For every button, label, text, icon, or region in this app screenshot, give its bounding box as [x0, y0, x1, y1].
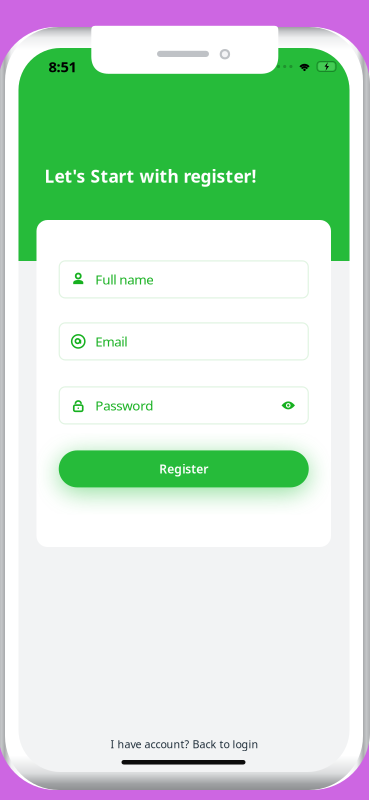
staticText: Full name: [95, 270, 154, 288]
staticText: Password: [95, 396, 153, 414]
button[interactable]: Full name: [59, 261, 308, 298]
staticText: Register: [159, 461, 208, 477]
staticText: 8:51: [48, 57, 76, 76]
button[interactable]: I have account? Back to login: [104, 736, 264, 752]
staticText: I have account? Back to login: [110, 737, 258, 751]
staticText: Email: [95, 332, 127, 350]
staticText: Let's Start with register!: [44, 164, 256, 187]
button[interactable]: Password: [59, 387, 308, 424]
button[interactable]: Email: [59, 323, 308, 360]
button[interactable]: Register: [59, 450, 309, 487]
